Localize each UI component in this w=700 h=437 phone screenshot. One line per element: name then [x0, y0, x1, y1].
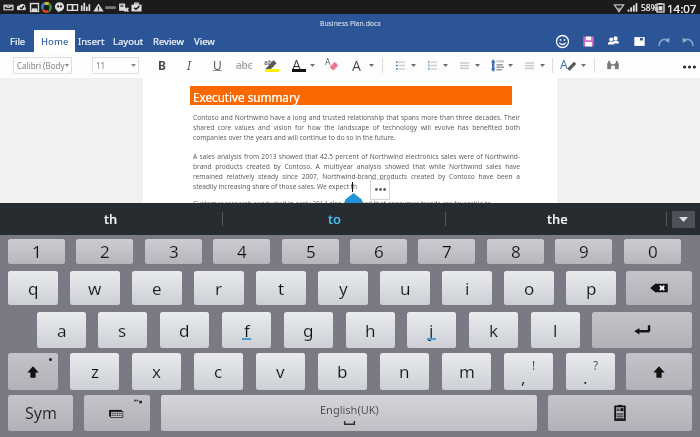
button[interactable]: Styles — [349, 55, 368, 74]
button[interactable]: e — [132, 271, 182, 305]
button[interactable]: Save — [577, 30, 599, 52]
button[interactable]: Emoji — [551, 30, 573, 52]
button[interactable]: 2 — [76, 239, 133, 264]
button[interactable]: Numbered list — [422, 55, 442, 75]
button[interactable]: Backspace — [626, 271, 692, 305]
button[interactable]: Review — [150, 30, 187, 52]
staticText: View — [194, 35, 215, 48]
button[interactable]: Shift — [8, 353, 58, 390]
button[interactable]: More options — [680, 57, 699, 76]
button[interactable]: j — [407, 312, 456, 348]
button[interactable]: th — [0, 203, 222, 235]
button[interactable]: Insert — [75, 30, 107, 52]
button[interactable]: Redo — [652, 30, 674, 52]
button[interactable]: Share — [602, 30, 624, 52]
staticText: English(UK) — [320, 402, 379, 417]
button[interactable]: Indent — [519, 55, 539, 75]
button[interactable]: More actions — [370, 179, 390, 200]
button[interactable]: 11 — [92, 57, 139, 74]
button[interactable]: 5 — [282, 239, 339, 264]
button[interactable]: x — [132, 353, 181, 390]
button[interactable]: English(UK) — [161, 395, 537, 431]
button[interactable]: . — [566, 353, 615, 390]
button[interactable]: Undo — [677, 30, 699, 52]
staticText: e — [152, 277, 162, 300]
button[interactable]: Find — [603, 55, 623, 75]
button[interactable]: Home — [34, 30, 75, 52]
button[interactable]: Format painter — [559, 55, 578, 74]
staticText: 11 — [96, 60, 106, 71]
staticText: m — [459, 360, 475, 383]
button[interactable]: Expand suggestions — [672, 211, 695, 228]
button[interactable]: c — [194, 353, 243, 390]
button[interactable]: Layout — [110, 30, 146, 52]
button[interactable]: Bullet list — [390, 55, 410, 75]
button[interactable]: u — [380, 271, 430, 305]
button[interactable]: Sym — [8, 395, 73, 431]
button[interactable]: Bold — [150, 53, 174, 77]
button[interactable]: 4 — [213, 239, 270, 264]
button[interactable]: File — [4, 30, 31, 52]
button[interactable]: the — [446, 203, 668, 235]
button[interactable]: h — [346, 312, 395, 348]
button[interactable]: to — [223, 203, 445, 235]
staticText: 4 — [237, 240, 247, 263]
button[interactable]: s — [98, 312, 147, 348]
staticText: l — [553, 319, 558, 342]
button[interactable]: w — [70, 271, 120, 305]
button[interactable]: o — [504, 271, 554, 305]
button[interactable]: i — [442, 271, 492, 305]
button[interactable]: 1 — [8, 239, 65, 264]
button[interactable]: d — [160, 312, 209, 348]
button[interactable]: l — [531, 312, 580, 348]
button[interactable]: n — [380, 353, 429, 390]
button[interactable]: Line spacing — [487, 55, 507, 75]
button[interactable]: 6 — [350, 239, 407, 264]
button[interactable]: 9 — [555, 239, 612, 264]
button[interactable]: Enter — [592, 312, 692, 348]
button[interactable]: View — [189, 30, 220, 52]
button[interactable]: v — [256, 353, 305, 390]
staticText: u — [400, 277, 411, 300]
staticText: aby — [264, 58, 276, 67]
staticText: k — [489, 319, 499, 342]
button[interactable]: Calibri (Body — [13, 57, 72, 74]
button[interactable]: b — [318, 353, 367, 390]
button[interactable]: Italic — [177, 53, 201, 77]
button[interactable]: y — [318, 271, 368, 305]
staticText: I — [187, 57, 191, 73]
staticText: abc — [236, 58, 253, 72]
button[interactable]: Shift — [626, 353, 692, 390]
button[interactable]: q — [8, 271, 58, 305]
button[interactable]: 3 — [145, 239, 202, 264]
button[interactable]: t — [256, 271, 306, 305]
staticText: t — [278, 277, 285, 300]
button[interactable]: Clipboard — [548, 395, 692, 431]
button[interactable]: a — [37, 312, 86, 348]
button[interactable]: Clear formatting — [323, 55, 342, 74]
staticText: . — [583, 366, 588, 389]
button[interactable]: m — [442, 353, 491, 390]
button[interactable]: k — [469, 312, 518, 348]
button[interactable]: 8 — [487, 239, 544, 264]
button[interactable]: , — [504, 353, 553, 390]
staticText: r — [215, 277, 223, 300]
button[interactable]: f — [222, 312, 271, 348]
button[interactable]: Change keyboard — [84, 395, 150, 431]
button[interactable]: Alignment — [454, 55, 474, 75]
button[interactable]: g — [284, 312, 333, 348]
button[interactable]: Font colour — [289, 55, 308, 74]
button[interactable]: Underline — [205, 53, 229, 77]
button[interactable]: Strikethrough — [232, 53, 256, 77]
button[interactable]: Comment — [628, 30, 650, 52]
button[interactable]: p — [566, 271, 616, 305]
button[interactable]: Text highlight — [262, 55, 282, 75]
staticText: Review — [153, 35, 184, 48]
button[interactable]: 7 — [418, 239, 475, 264]
button[interactable]: r — [194, 271, 244, 305]
staticText: A sales analysis from 2013 showed that 4… — [193, 152, 520, 191]
staticText: z — [91, 360, 99, 383]
button[interactable]: 0 — [624, 239, 681, 264]
button[interactable]: z — [70, 353, 119, 390]
staticText: q — [28, 277, 39, 300]
